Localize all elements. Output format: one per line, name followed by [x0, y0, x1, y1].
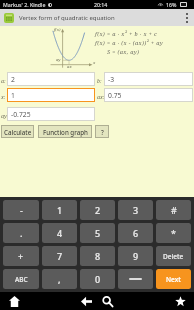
button[interactable]: More options — [180, 10, 194, 26]
button[interactable]: . — [3, 223, 39, 243]
staticText: Function graph — [43, 128, 88, 136]
staticText: ABC — [15, 275, 28, 284]
button[interactable]: -3 — [104, 72, 193, 86]
staticText: 9 — [133, 250, 139, 262]
staticText: ax — [67, 64, 72, 70]
staticText: ? — [101, 128, 104, 136]
staticText: 0 — [95, 273, 101, 285]
button[interactable]: Function graph — [38, 125, 92, 138]
staticText: 0.75 — [108, 91, 122, 100]
button[interactable]: # — [156, 200, 191, 220]
button[interactable]: 4 — [42, 223, 77, 243]
button[interactable]: 3 — [118, 200, 153, 220]
button[interactable]: Delete — [156, 246, 191, 266]
staticText: . — [20, 227, 23, 239]
staticText: f(x) = a · (x − (ax))² + ay — [95, 39, 164, 47]
button[interactable]: 0 — [80, 269, 115, 289]
button[interactable]: -0.725 — [7, 107, 95, 121]
staticText: 4 — [57, 227, 63, 239]
staticText: -0.725 — [11, 110, 31, 119]
staticText: 3 — [133, 204, 139, 216]
button[interactable]: 9 — [118, 246, 153, 266]
button[interactable]: Bookmark — [170, 292, 190, 310]
button[interactable]: 1 — [42, 200, 77, 220]
staticText: , — [58, 273, 61, 285]
button[interactable]: ABC — [3, 269, 39, 289]
staticText: Next — [166, 275, 181, 284]
staticText: Calculate — [4, 128, 32, 136]
button[interactable]: 1 — [7, 88, 95, 102]
staticText: 20:14 — [94, 1, 108, 8]
staticText: - — [20, 204, 23, 216]
button[interactable] — [118, 269, 153, 289]
button[interactable]: 5 — [80, 223, 115, 243]
button[interactable]: Back — [76, 292, 96, 310]
staticText: 2 — [11, 75, 15, 84]
staticText: + — [18, 250, 24, 262]
staticText: * — [171, 227, 176, 239]
button[interactable]: Search — [97, 292, 117, 310]
button[interactable]: Next — [156, 269, 191, 289]
button[interactable]: 2 — [7, 72, 95, 86]
button[interactable]: * — [156, 223, 191, 243]
staticText: f(x) — [54, 27, 61, 33]
staticText: 6 — [133, 227, 139, 239]
staticText: a: — [1, 77, 6, 84]
button[interactable]: ? — [95, 125, 109, 138]
staticText: ay — [56, 57, 61, 63]
button[interactable]: Calculate — [1, 125, 34, 138]
staticText: x — [93, 60, 96, 66]
button[interactable]: Home — [4, 292, 24, 310]
staticText: 2 — [95, 204, 101, 216]
button[interactable]: , — [42, 269, 77, 289]
staticText: x: — [1, 93, 6, 100]
staticText: S = (ax, ay) — [107, 48, 140, 56]
button[interactable]: 0.75 — [104, 88, 193, 102]
button[interactable]: + — [3, 246, 39, 266]
staticText: 8 — [95, 250, 101, 262]
staticText: 5 — [95, 227, 101, 239]
staticText: 16% — [166, 1, 177, 8]
staticText: f(x) = a · x² + b · x + c — [95, 30, 158, 38]
staticText: -3 — [108, 75, 115, 84]
staticText: 1 — [57, 204, 63, 216]
staticText: 7 — [57, 250, 63, 262]
staticText: Delete — [163, 252, 184, 261]
staticText: Vertex form of quadratic equation — [19, 14, 115, 22]
button[interactable]: 6 — [118, 223, 153, 243]
button[interactable]: 8 — [80, 246, 115, 266]
staticText: ay: — [1, 112, 9, 119]
staticText: b: — [97, 77, 102, 84]
staticText: ax: — [97, 93, 105, 100]
staticText: 1 — [11, 91, 15, 100]
button[interactable]: 7 — [42, 246, 77, 266]
button[interactable]: 2 — [80, 200, 115, 220]
staticText: Markus' 2. Kindle — [3, 1, 46, 8]
staticText: # — [171, 204, 177, 216]
button[interactable]: - — [3, 200, 39, 220]
